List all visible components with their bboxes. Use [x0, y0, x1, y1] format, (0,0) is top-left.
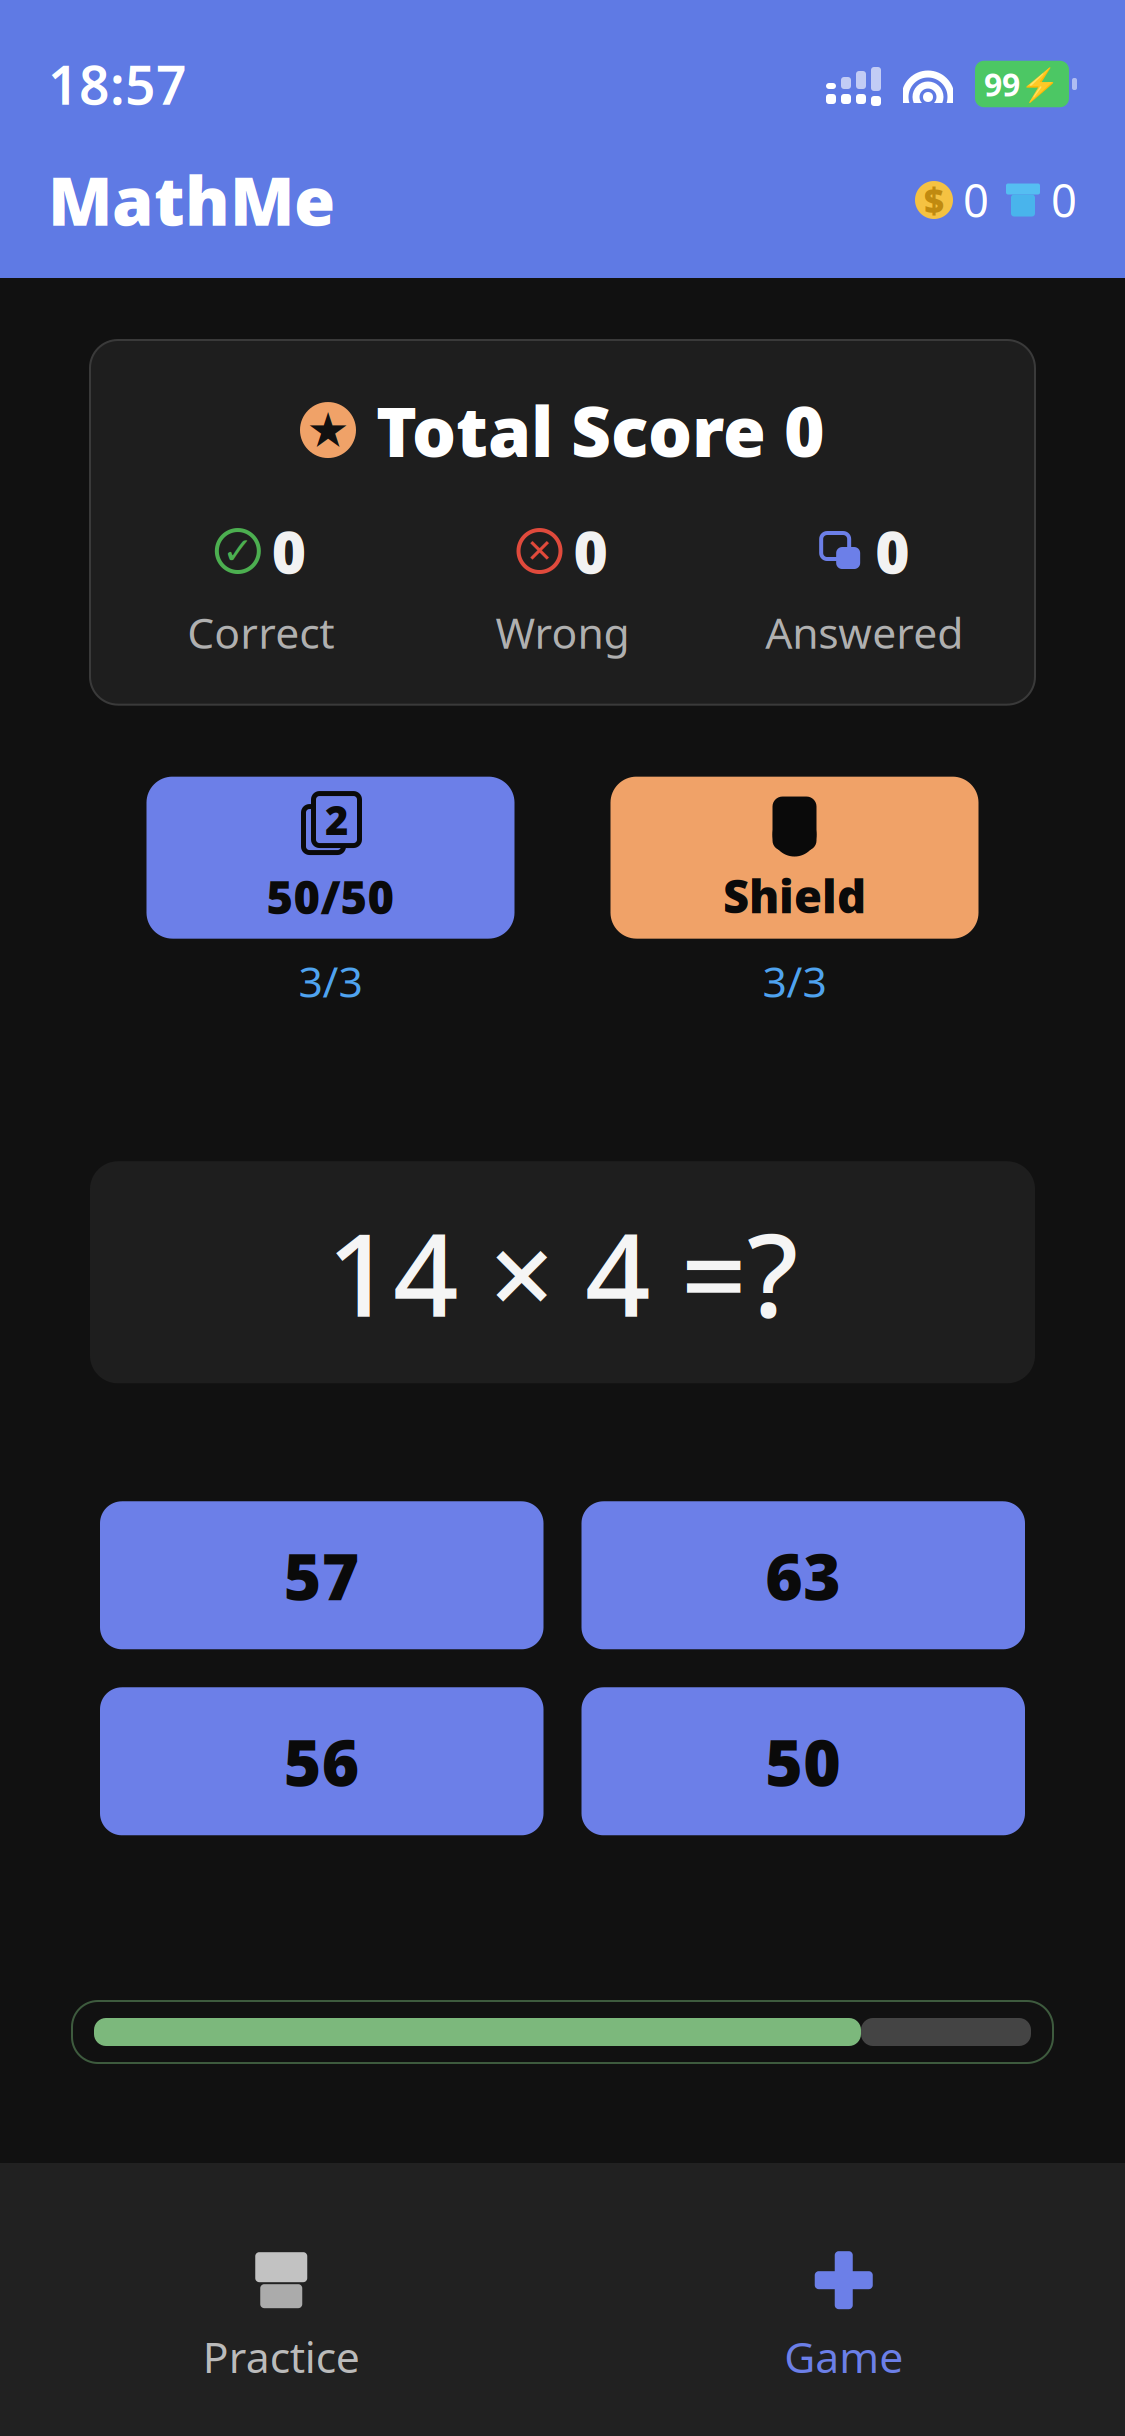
staticText: 57 [284, 1533, 360, 1618]
staticText: Game [784, 2328, 903, 2385]
staticText: ✕ [526, 533, 553, 569]
staticText: ★ [306, 403, 349, 457]
staticText: 18:57 [48, 49, 187, 119]
staticText: 0 [573, 512, 607, 590]
button[interactable]: Coins [915, 170, 989, 230]
staticText: 0 [963, 170, 989, 230]
staticText: 14 × 4 =? [327, 1196, 798, 1348]
staticText: 3/3 [762, 953, 826, 1009]
staticText: Correct [187, 604, 334, 661]
staticText: Total Score 0 [376, 384, 825, 476]
button[interactable]: 50 [581, 1687, 1025, 1835]
staticText: 3/3 [298, 953, 362, 1009]
staticText: 50 [765, 1719, 841, 1804]
button[interactable]: 63 [581, 1501, 1025, 1649]
button[interactable]: 57 [100, 1501, 543, 1649]
button[interactable]: Game [562, 2214, 1125, 2385]
staticText: ✓ [222, 530, 253, 572]
staticText: Practice [203, 2328, 360, 2385]
button[interactable]: Shield [610, 777, 978, 939]
staticText: 2 [325, 793, 348, 846]
button[interactable]: 2 [146, 777, 514, 939]
button[interactable]: Practice [0, 2214, 562, 2385]
staticText: Answered [765, 604, 963, 661]
staticText: 0 [875, 512, 909, 590]
staticText: 56 [284, 1719, 360, 1804]
staticText: 63 [765, 1533, 841, 1618]
button[interactable]: Gems [1005, 170, 1077, 230]
button[interactable]: 56 [100, 1687, 543, 1835]
staticText: 0 [272, 512, 306, 590]
staticText: 50/50 [266, 866, 394, 927]
staticText: 0 [1051, 170, 1077, 230]
staticText: $ [924, 177, 944, 223]
staticText: Shield [723, 865, 866, 926]
staticText: Wrong [495, 604, 629, 661]
staticText: MathMe [48, 156, 335, 244]
staticText: 99⚡ [984, 63, 1060, 105]
